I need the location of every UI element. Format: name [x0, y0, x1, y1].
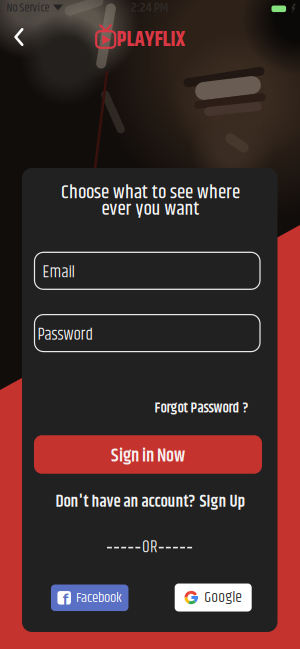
- staticText: ever you want: [101, 195, 199, 224]
- staticText: Email: [42, 260, 74, 285]
- staticText: Sign Up: [199, 489, 245, 515]
- staticText: Forgot Password ?: [154, 397, 248, 419]
- button[interactable]: Google: [175, 583, 252, 611]
- button[interactable]: Forgot Password ?: [154, 397, 248, 419]
- staticText: f: [62, 589, 68, 609]
- staticText: PLAYFLIX: [116, 24, 185, 56]
- button[interactable]: Sign Up: [199, 489, 245, 515]
- staticText: Don't have an account?: [55, 489, 195, 515]
- staticText: Facebook: [76, 587, 122, 609]
- staticText: No Service: [6, 0, 49, 17]
- staticText: Google: [204, 586, 242, 609]
- button[interactable]: f: [51, 584, 128, 611]
- button[interactable]: Back: [4, 22, 34, 52]
- button[interactable]: Sign in Now: [34, 435, 262, 474]
- staticText: Password: [37, 322, 92, 348]
- staticText: Choose what to see where: [61, 178, 240, 207]
- staticText: 2:24 PM: [131, 0, 168, 18]
- staticText: Sign in Now: [111, 442, 185, 470]
- staticText: OR: [142, 535, 158, 560]
